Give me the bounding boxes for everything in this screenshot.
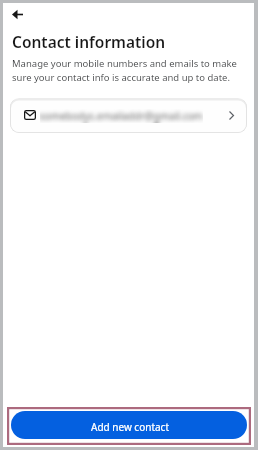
button[interactable]: Back xyxy=(2,0,32,29)
staticText: Manage your mobile numbers and emails to… xyxy=(12,57,244,84)
button[interactable]: somebodys.emailaddr@gmail.com xyxy=(10,98,247,133)
button[interactable]: Add new contact xyxy=(11,411,247,439)
staticText: Add new contact xyxy=(91,420,170,434)
staticText: somebodys.emailaddr@gmail.com xyxy=(40,109,203,123)
staticText: Contact information xyxy=(12,31,166,52)
